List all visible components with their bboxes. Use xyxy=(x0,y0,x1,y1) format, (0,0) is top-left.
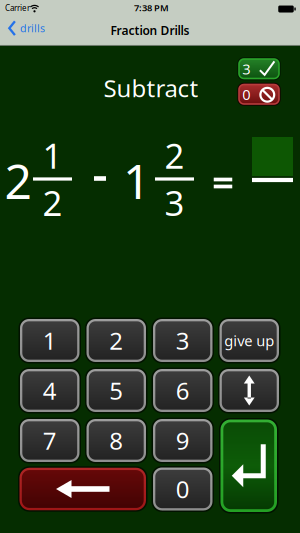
staticText: 2 xyxy=(164,132,184,178)
button[interactable]: 8 xyxy=(85,417,147,463)
button[interactable]: 9 xyxy=(151,417,214,463)
staticText: 3 xyxy=(176,325,190,356)
button[interactable]: 7 xyxy=(18,417,81,463)
staticText: Fraction Drills xyxy=(110,22,189,38)
staticText: Subtract xyxy=(103,72,198,104)
staticText: 1 xyxy=(123,149,150,212)
button[interactable]: 5 xyxy=(85,367,147,413)
staticText: 7 xyxy=(43,425,57,456)
button[interactable]: 1 xyxy=(18,317,81,363)
staticText: 6 xyxy=(176,375,190,406)
button[interactable]: 2 xyxy=(85,317,147,363)
button[interactable]: drills xyxy=(4,16,48,40)
staticText: Carrier xyxy=(5,3,30,13)
staticText: 3 xyxy=(242,59,250,78)
staticText: 2 xyxy=(42,180,62,226)
staticText: 2 xyxy=(4,149,31,212)
staticText: 1 xyxy=(42,132,62,178)
staticText: 1 xyxy=(43,325,57,356)
staticText: 0 xyxy=(242,84,250,104)
staticText: 0 xyxy=(176,473,190,505)
button[interactable]: Enter answer xyxy=(219,418,278,513)
staticText: 4 xyxy=(43,375,57,406)
staticText: drills xyxy=(20,21,45,35)
button[interactable]: 0 xyxy=(151,466,214,512)
staticText: 8 xyxy=(109,425,123,456)
staticText: 7:38 PM xyxy=(134,1,169,14)
button[interactable]: give up xyxy=(218,317,280,363)
staticText: 3 xyxy=(164,180,184,226)
button[interactable]: Toggle whole number and fraction xyxy=(218,367,280,413)
staticText: 2 xyxy=(109,325,123,356)
staticText: 9 xyxy=(176,425,190,456)
button[interactable]: 3 xyxy=(151,317,214,363)
staticText: 5 xyxy=(109,375,123,406)
button[interactable]: 6 xyxy=(151,367,214,413)
staticText: give up xyxy=(224,331,274,350)
button[interactable]: 4 xyxy=(18,367,81,413)
button[interactable]: Backspace xyxy=(18,466,147,512)
